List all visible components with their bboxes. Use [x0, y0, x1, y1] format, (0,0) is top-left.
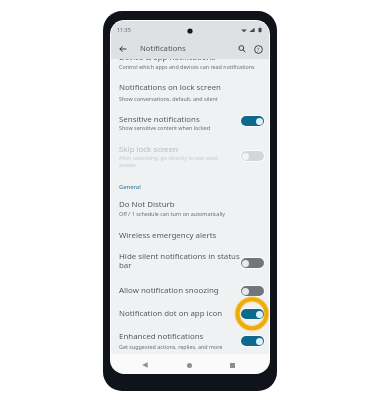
- button[interactable]: [111, 247, 269, 271]
- staticText: Hide silent notifications in status: [119, 251, 240, 262]
- button[interactable]: Back: [138, 358, 152, 372]
- staticText: Device & app notifications: [119, 52, 216, 63]
- staticText: Allow notification snoozing: [119, 285, 219, 296]
- button[interactable]: Toggle: [240, 335, 265, 347]
- staticText: Notifications on lock screen: [119, 82, 221, 93]
- button[interactable]: [111, 201, 269, 223]
- button[interactable]: Help: [250, 41, 266, 57]
- staticText: After unlocking, go directly to last use…: [119, 154, 218, 161]
- staticText: Control which apps and devices can read …: [119, 63, 255, 70]
- button[interactable]: Recents: [225, 358, 239, 372]
- button[interactable]: Toggle: [240, 115, 265, 127]
- button[interactable]: [111, 179, 269, 201]
- staticText: 11:35: [117, 26, 131, 33]
- staticText: Enhanced notifications: [119, 331, 204, 342]
- button[interactable]: Toggle: [240, 257, 265, 269]
- staticText: General: [119, 183, 141, 191]
- button[interactable]: [111, 125, 269, 155]
- staticText: Wireless emergency alerts: [119, 230, 217, 241]
- button[interactable]: [111, 223, 269, 247]
- button[interactable]: Home: [182, 358, 196, 372]
- staticText: Do Not Disturb: [119, 199, 175, 210]
- button[interactable]: [111, 57, 269, 81]
- staticText: Sensitive notifications: [119, 114, 200, 125]
- staticText: Skip lock screen: [119, 144, 178, 155]
- staticText: Off / 1 schedule can turn on automatical…: [119, 210, 225, 217]
- staticText: ?: [257, 46, 260, 53]
- button[interactable]: Toggle: [240, 285, 265, 297]
- button[interactable]: [111, 81, 269, 103]
- button[interactable]: [111, 271, 269, 295]
- staticText: Show sensitive content when locked: [119, 124, 211, 131]
- button[interactable]: Search: [234, 41, 250, 57]
- button[interactable]: [111, 103, 269, 125]
- staticText: Get suggested actions, replies, and more: [119, 343, 223, 350]
- button[interactable]: Toggle: [240, 150, 265, 162]
- staticText: bar: [119, 260, 132, 271]
- staticText: Show conversations, default, and silent: [119, 95, 218, 102]
- button[interactable]: [111, 295, 269, 319]
- staticText: Notifications: [140, 43, 186, 53]
- staticText: Notification dot on app icon: [119, 308, 223, 319]
- button[interactable]: Toggle: [240, 308, 265, 320]
- button[interactable]: Back: [114, 40, 132, 58]
- button[interactable]: [111, 319, 269, 347]
- staticText: screen: [119, 161, 136, 168]
